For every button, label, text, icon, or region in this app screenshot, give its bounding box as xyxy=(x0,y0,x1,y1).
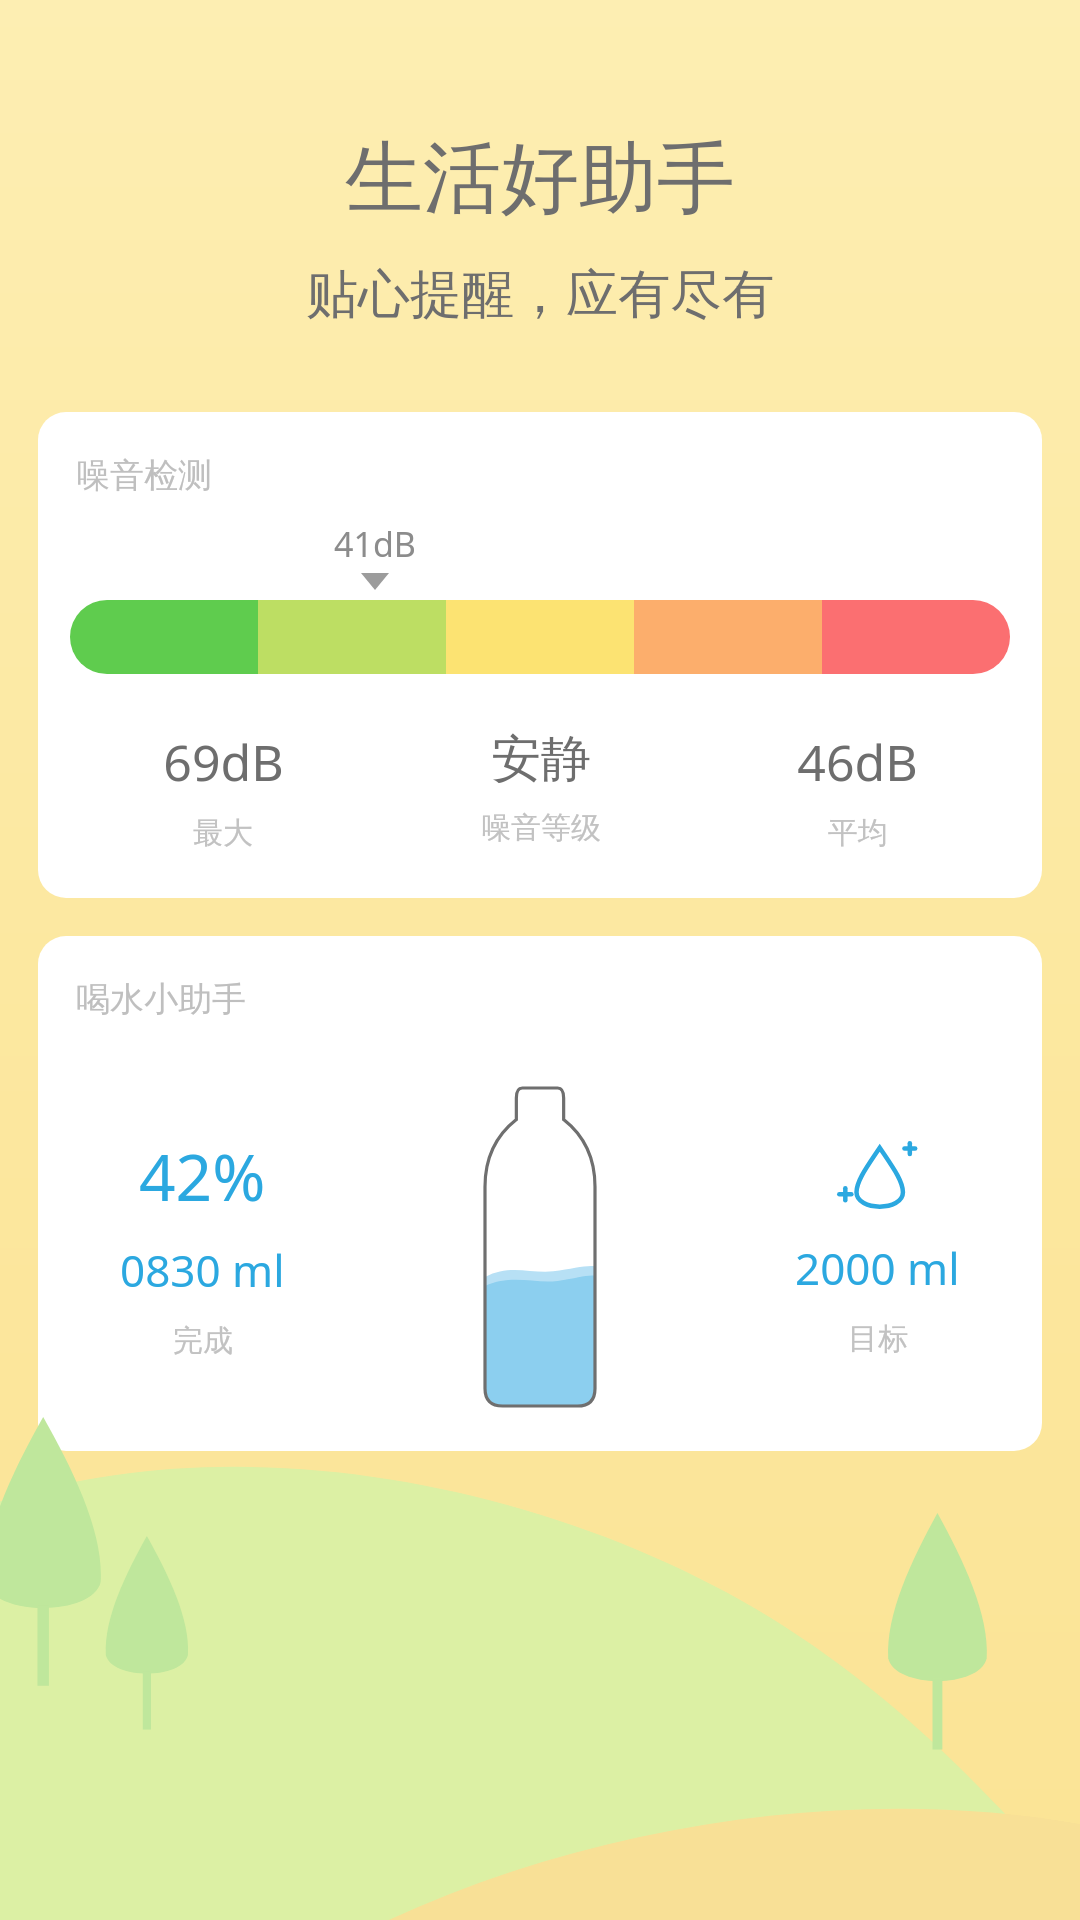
staticText: 贴心提醒，应有尽有 xyxy=(0,262,1080,328)
button[interactable]: 69dB xyxy=(64,728,382,852)
button[interactable]: 噪音检测 xyxy=(38,412,1042,898)
staticText: 噪音检测 xyxy=(76,454,212,497)
staticText: 噪音等级 xyxy=(481,809,601,847)
staticText: 69dB xyxy=(163,728,284,796)
staticText: 平均 xyxy=(828,814,888,852)
staticText: 完成 xyxy=(173,1322,233,1360)
button[interactable]: 安静 xyxy=(382,728,699,847)
staticText: 安静 xyxy=(491,728,591,791)
staticText: 最大 xyxy=(193,814,253,852)
staticText: 喝水小助手 xyxy=(76,978,246,1021)
staticText: 0830 ml xyxy=(120,1240,285,1300)
staticText: 41dB xyxy=(334,521,416,567)
staticText: 生活好助手 xyxy=(0,130,1080,228)
staticText: 2000 ml xyxy=(795,1238,960,1298)
other: Daily water goal xyxy=(835,1134,921,1220)
staticText: 目标 xyxy=(848,1320,908,1358)
button[interactable]: 喝水小助手 xyxy=(38,936,1042,1451)
button[interactable]: 46dB xyxy=(699,728,1016,852)
staticText: 42% xyxy=(139,1133,266,1220)
staticText: 46dB xyxy=(797,728,918,796)
